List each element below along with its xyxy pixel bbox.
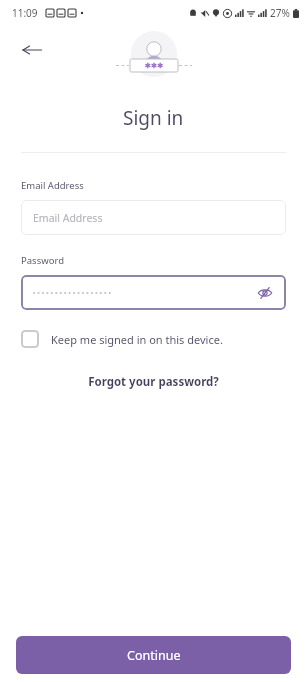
staticText: Continue <box>127 647 181 664</box>
button[interactable]: Back <box>12 30 52 70</box>
staticText: Password <box>21 254 64 267</box>
button[interactable]: Continue <box>16 636 291 674</box>
staticText: Email Address <box>21 179 84 192</box>
staticText: Keep me signed in on this device. <box>51 332 223 347</box>
button[interactable]: Keep me signed in on this device. <box>21 330 286 348</box>
staticText: Forgot your password? <box>88 374 219 390</box>
staticText: Email Address <box>33 211 103 225</box>
staticText: Sign in <box>123 105 184 131</box>
button[interactable]: Email Address <box>21 200 286 235</box>
staticText: 11:09 <box>12 6 38 20</box>
button[interactable]: Show password <box>21 275 286 310</box>
button[interactable]: Forgot your password? <box>80 370 227 394</box>
staticText: 27% <box>270 6 290 20</box>
button[interactable]: Show password <box>250 278 280 308</box>
